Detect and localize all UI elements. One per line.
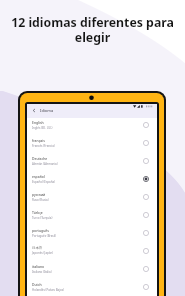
- staticText: Türkçe: [32, 210, 43, 215]
- button[interactable]: Deutsche: [27, 154, 157, 172]
- button[interactable]: Back: [32, 108, 35, 113]
- button[interactable]: Dutch: [27, 280, 157, 296]
- staticText: Portugués (Brasil): [32, 234, 57, 238]
- staticText: Alemán (Alemania): [32, 162, 58, 166]
- staticText: Ruso (Rusia): [32, 198, 49, 202]
- staticText: Francés (Francia): [32, 144, 55, 148]
- button[interactable]: italiano: [27, 262, 157, 280]
- staticText: Idioma: [40, 108, 54, 113]
- staticText: Holandés (Países Bajos): [32, 288, 64, 292]
- staticText: español: [32, 174, 45, 179]
- staticText: Japonés (Japón): [32, 251, 54, 255]
- staticText: Español (España): [32, 180, 55, 184]
- staticText: русский: [32, 192, 46, 197]
- staticText: English: [32, 120, 44, 125]
- staticText: Inglés (EE. UU.): [32, 126, 53, 130]
- staticText: 12 idiomas diferentes para elegir: [5, 14, 180, 45]
- button[interactable]: português: [27, 226, 157, 244]
- button[interactable]: 日本語: [27, 244, 157, 262]
- staticText: 日本語: [32, 246, 43, 250]
- staticText: português: [32, 228, 49, 233]
- staticText: français: [32, 138, 45, 143]
- staticText: Italiano (Italia): [32, 270, 52, 274]
- button[interactable]: español: [27, 172, 157, 190]
- staticText: Turco (Turquía): [32, 216, 53, 220]
- button[interactable]: English: [27, 118, 157, 136]
- button[interactable]: Türkçe: [27, 208, 157, 226]
- staticText: italiano: [32, 264, 45, 269]
- staticText: Dutch: [32, 282, 42, 287]
- button[interactable]: français: [27, 136, 157, 154]
- button[interactable]: русский: [27, 190, 157, 208]
- staticText: Deutsche: [32, 156, 48, 161]
